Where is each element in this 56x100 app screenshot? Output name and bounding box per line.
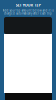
staticText: SET YOUR TIP — [15, 2, 40, 8]
staticText: Add your tip amount below and it is — [2, 9, 53, 12]
staticText: charged automatically after each trip — [4, 12, 52, 15]
